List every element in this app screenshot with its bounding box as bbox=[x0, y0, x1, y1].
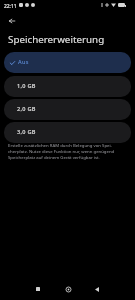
staticText: Speichererweiterung bbox=[8, 33, 105, 46]
staticText: 3,0 GB bbox=[17, 128, 36, 136]
button[interactable]: Home bbox=[59, 280, 77, 298]
staticText: Erstelle zusätzlichen RAM durch Belegung… bbox=[8, 142, 132, 160]
staticText: 1,0 GB bbox=[17, 82, 36, 90]
button[interactable]: Recent apps bbox=[29, 280, 47, 298]
button[interactable]: 1,0 GB bbox=[4, 76, 131, 97]
button[interactable]: 3,0 GB bbox=[4, 122, 131, 143]
button[interactable]: Back bbox=[88, 280, 106, 298]
staticText: Aus bbox=[18, 58, 29, 66]
button[interactable]: Aus bbox=[4, 52, 131, 73]
staticText: 2,0 GB bbox=[17, 105, 36, 113]
staticText: 22:11 bbox=[4, 3, 17, 10]
button[interactable]: Back bbox=[5, 14, 19, 28]
button[interactable]: 2,0 GB bbox=[4, 99, 131, 120]
